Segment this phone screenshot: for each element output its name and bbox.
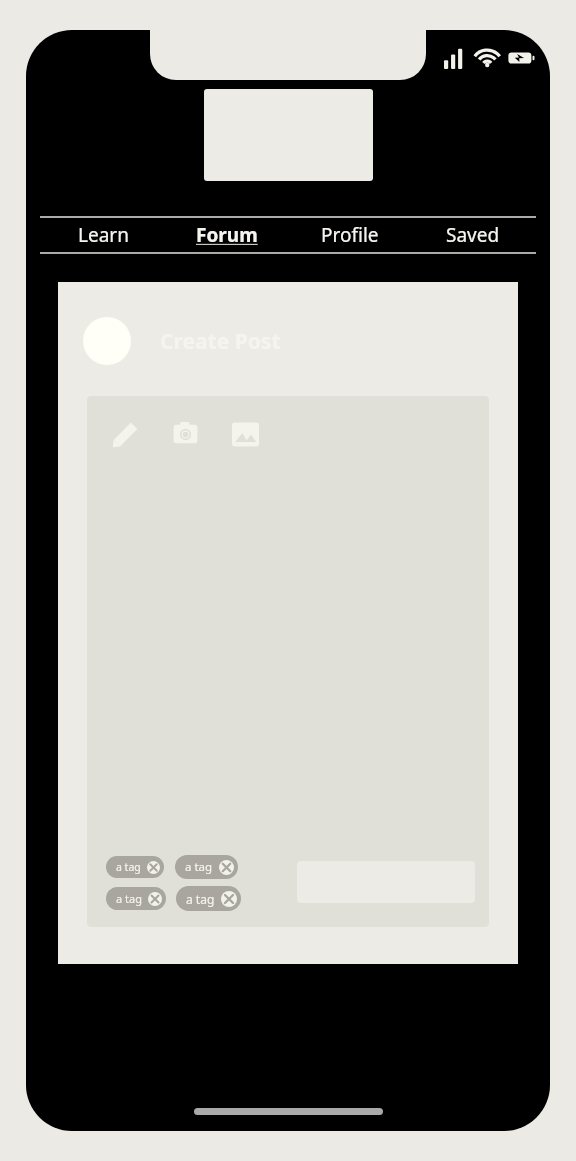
staticText: Create Post	[160, 327, 281, 356]
staticText: Learn	[78, 222, 129, 248]
button[interactable]: Tag a tag, remove	[175, 855, 238, 879]
staticText: Saved	[446, 222, 500, 248]
staticText: a tag	[186, 891, 215, 907]
button[interactable]: Forum	[165, 218, 288, 252]
button[interactable]: Write text	[104, 413, 146, 455]
button[interactable]: Add image	[224, 413, 266, 455]
button[interactable]: Tag a tag, remove	[176, 886, 241, 911]
button[interactable]: Saved	[411, 218, 534, 252]
button[interactable]: Profile avatar	[83, 317, 131, 365]
button[interactable]: Tag a tag, remove	[106, 887, 166, 910]
staticText: a tag	[185, 859, 213, 875]
staticText: a tag	[116, 891, 142, 906]
button[interactable]: Profile	[288, 218, 411, 252]
staticText: Profile	[321, 222, 379, 248]
button[interactable]: App logo	[204, 89, 373, 181]
button[interactable]: Learn	[42, 218, 165, 252]
staticText: a tag	[116, 860, 141, 874]
button[interactable]: Tag a tag, remove	[106, 856, 164, 878]
staticText: Forum	[196, 222, 258, 248]
button[interactable]: Take photo	[164, 413, 206, 455]
